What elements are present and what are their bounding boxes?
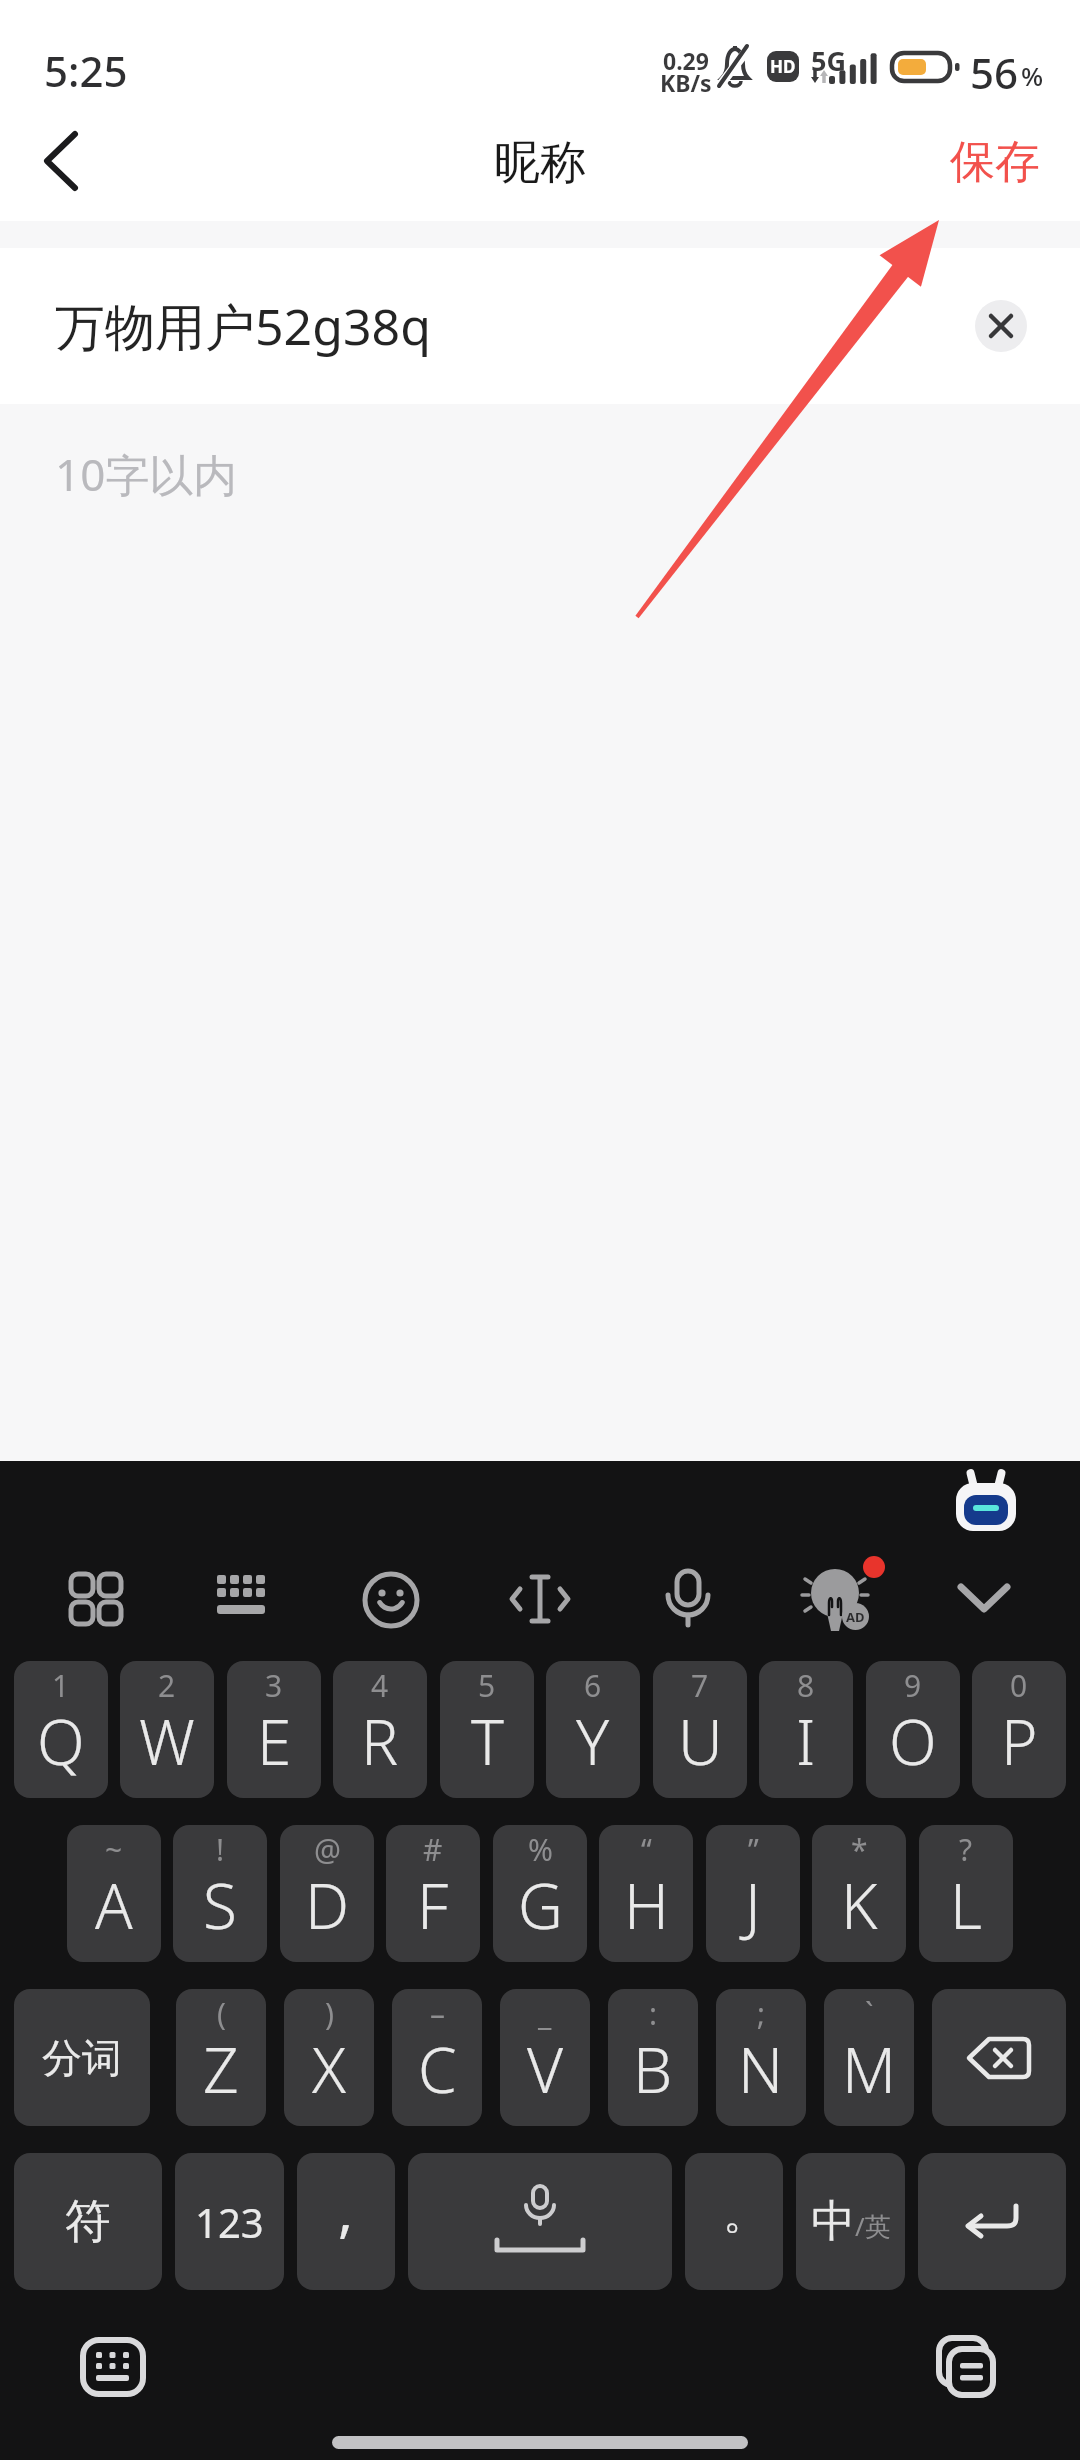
staticText: B — [633, 2027, 673, 2111]
staticText: 5G — [811, 42, 846, 79]
staticText: 56 — [970, 44, 1019, 101]
button[interactable]: # — [386, 1825, 480, 1962]
staticText: L — [950, 1863, 982, 1947]
staticText: ; — [757, 1993, 766, 2034]
button[interactable]: 1 — [14, 1661, 108, 1798]
staticText: S — [203, 1863, 237, 1947]
button[interactable]: 。 — [685, 2153, 783, 2290]
button[interactable]: 0 — [972, 1661, 1066, 1798]
staticText: R — [361, 1699, 399, 1783]
staticText: ? — [959, 1829, 973, 1870]
staticText: % — [1021, 58, 1044, 93]
button[interactable]: ” — [706, 1825, 800, 1962]
staticText: 10字以内 — [55, 444, 238, 504]
staticText: AD — [846, 1608, 865, 1626]
staticText: W — [139, 1699, 195, 1783]
staticText: 8 — [797, 1665, 815, 1706]
staticText: 4 — [371, 1665, 389, 1706]
button[interactable]: 9 — [866, 1661, 960, 1798]
staticText: E — [257, 1699, 292, 1783]
button[interactable]: 3 — [227, 1661, 321, 1798]
button[interactable] — [408, 2153, 672, 2290]
button[interactable] — [362, 1571, 420, 1629]
button[interactable]: ) — [284, 1989, 374, 2126]
staticText: 9 — [904, 1665, 922, 1706]
staticText: F — [417, 1863, 449, 1947]
button[interactable]: ~ — [67, 1825, 161, 1962]
button[interactable]: 5 — [440, 1661, 534, 1798]
staticText: /英 — [855, 2208, 891, 2244]
button[interactable]: 2 — [120, 1661, 214, 1798]
button[interactable]: 中 — [796, 2153, 905, 2290]
staticText: Z — [203, 2027, 239, 2111]
button[interactable]: % — [493, 1825, 587, 1962]
staticText: K — [841, 1863, 878, 1947]
button[interactable]: “ — [599, 1825, 693, 1962]
staticText: 0.29 — [663, 45, 709, 76]
staticText: 5 — [478, 1665, 496, 1706]
button[interactable] — [918, 2153, 1066, 2290]
button[interactable]: , — [297, 2153, 395, 2290]
button[interactable]: 8 — [759, 1661, 853, 1798]
button[interactable]: 分词 — [14, 1989, 150, 2126]
staticText: : — [649, 1993, 658, 2034]
button[interactable]: 4 — [333, 1661, 427, 1798]
staticText: H — [624, 1863, 669, 1947]
button[interactable]: 123 — [175, 2153, 284, 2290]
button[interactable]: ? — [919, 1825, 1013, 1962]
staticText: N — [738, 2027, 784, 2111]
button[interactable] — [952, 1575, 1016, 1623]
staticText: Q — [37, 1699, 85, 1783]
staticText: – — [430, 1993, 445, 2034]
staticText: 。 — [723, 2186, 767, 2241]
button[interactable]: @ — [280, 1825, 374, 1962]
staticText: 2 — [158, 1665, 176, 1706]
button[interactable]: ! — [173, 1825, 267, 1962]
button[interactable]: 万物用户52g38q — [0, 248, 1080, 404]
staticText: 中 — [811, 2194, 855, 2249]
staticText: KB/s — [660, 67, 712, 98]
staticText: ( — [217, 1993, 226, 2034]
staticText: I — [796, 1699, 816, 1783]
button[interactable] — [664, 1569, 712, 1629]
button[interactable] — [80, 2337, 146, 2397]
button[interactable] — [952, 1469, 1022, 1533]
button[interactable]: ; — [716, 1989, 806, 2126]
button[interactable]: ` — [824, 1989, 914, 2126]
staticText: 保存 — [950, 134, 1040, 191]
button[interactable] — [30, 130, 94, 194]
staticText: 0 — [1010, 1665, 1028, 1706]
staticText: 昵称 — [0, 134, 1080, 192]
button[interactable] — [936, 2335, 1000, 2401]
button[interactable]: _ — [500, 1989, 590, 2126]
button[interactable]: 6 — [546, 1661, 640, 1798]
staticText: X — [312, 2027, 346, 2111]
button[interactable] — [68, 1571, 124, 1627]
staticText: @ — [314, 1829, 341, 1870]
staticText: _ — [538, 1993, 552, 2034]
button[interactable]: ( — [176, 1989, 266, 2126]
staticText: G — [518, 1863, 563, 1947]
button[interactable]: * — [812, 1825, 906, 1962]
staticText: , — [338, 2172, 354, 2248]
staticText: C — [418, 2027, 457, 2111]
button[interactable]: – — [392, 1989, 482, 2126]
button[interactable] — [510, 1571, 570, 1627]
staticText: M — [842, 2027, 897, 2111]
staticText: ) — [325, 1993, 334, 2034]
staticText: A — [95, 1863, 133, 1947]
staticText: 万物用户52g38q — [55, 292, 431, 360]
staticText: U — [678, 1699, 723, 1783]
staticText: 123 — [195, 2195, 264, 2249]
button[interactable]: 7 — [653, 1661, 747, 1798]
button[interactable]: : — [608, 1989, 698, 2126]
staticText: J — [745, 1863, 761, 1947]
button[interactable]: 保存 — [930, 120, 1060, 204]
button[interactable] — [932, 1989, 1066, 2126]
staticText: 5:25 — [44, 42, 128, 99]
button[interactable]: AD — [795, 1559, 895, 1639]
button[interactable]: 符 — [14, 2153, 162, 2290]
button[interactable] — [217, 1575, 269, 1623]
staticText: 分词 — [42, 2033, 122, 2083]
button[interactable] — [975, 300, 1027, 352]
